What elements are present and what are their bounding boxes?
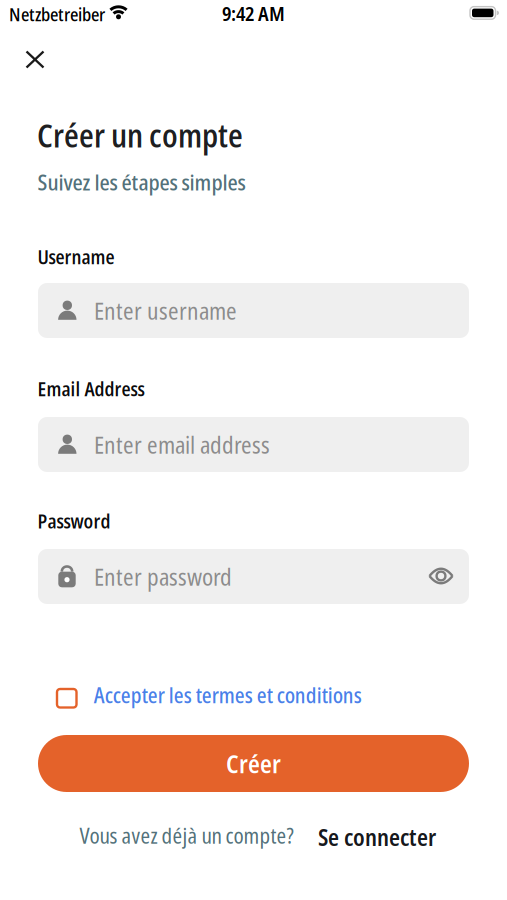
staticText: Accepter les termes et conditions [94, 680, 362, 709]
button[interactable]: Close [23, 47, 47, 71]
button[interactable]: Enter username [38, 283, 469, 338]
staticText: Enter password [94, 560, 232, 593]
button[interactable]: Se connecter [318, 821, 436, 853]
staticText: Netzbetreiber [9, 1, 105, 27]
staticText: Enter email address [94, 428, 270, 461]
staticText: Créer un compte [37, 113, 243, 157]
staticText: Email Address [37, 375, 144, 402]
button[interactable]: Show password [428, 565, 454, 587]
staticText: Suivez les étapes simples [37, 167, 245, 197]
button[interactable]: Enter email address [38, 417, 469, 472]
button[interactable]: Enter password [38, 549, 469, 604]
button[interactable]: Créer [38, 735, 469, 792]
staticText: Username [37, 243, 114, 270]
staticText: Password [37, 507, 110, 534]
staticText: 9:42 AM [222, 0, 285, 27]
button[interactable]: Accepter les termes et conditions [57, 689, 325, 718]
staticText: Vous avez déjà un compte? [79, 821, 293, 850]
staticText: Créer [226, 746, 281, 781]
staticText: Se connecter [318, 821, 436, 853]
staticText: Enter username [94, 294, 237, 327]
